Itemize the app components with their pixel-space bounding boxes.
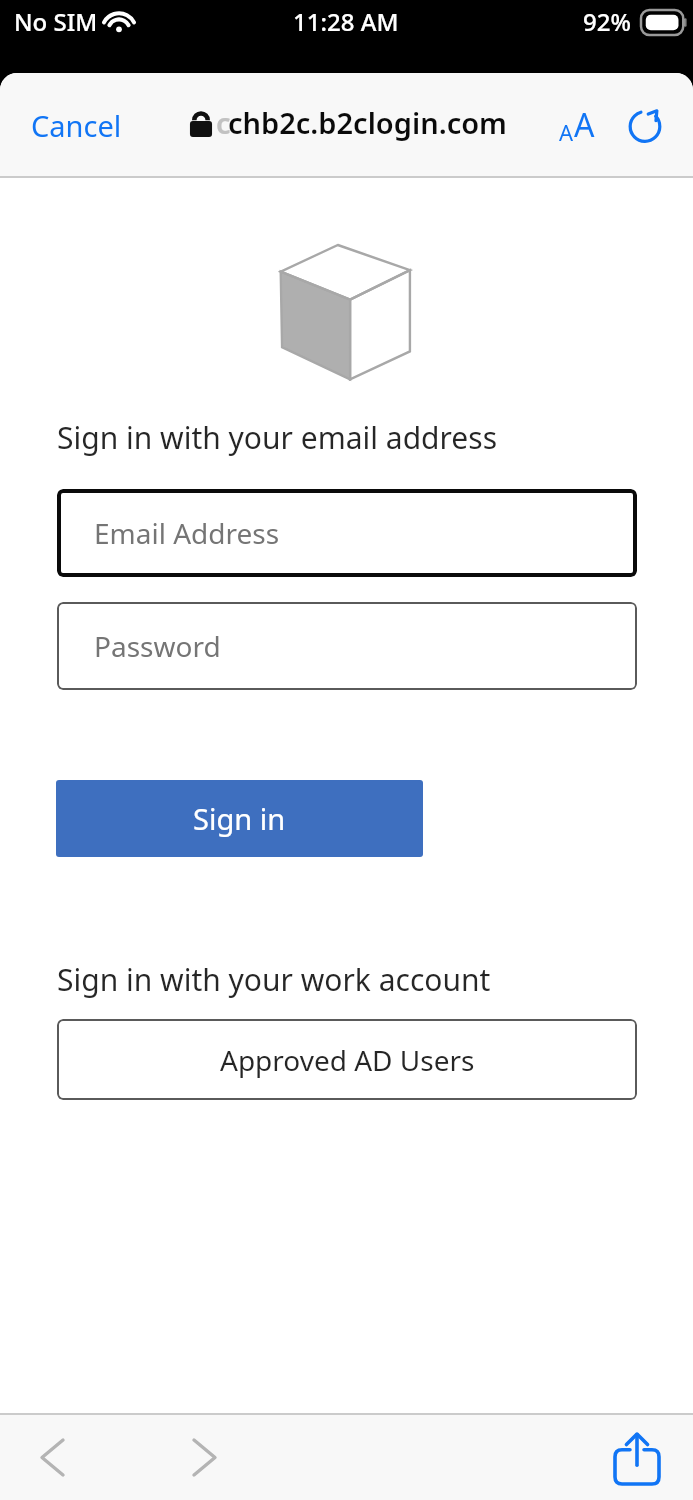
staticText: chb2c.b2clogin.com <box>228 103 507 142</box>
staticText: Approved AD Users <box>220 1041 475 1079</box>
button[interactable]: Email Address <box>57 489 637 577</box>
staticText: A <box>559 117 574 147</box>
staticText: A <box>574 103 595 147</box>
button[interactable]: Approved AD Users <box>57 1019 637 1100</box>
staticText: Email Address <box>94 514 280 552</box>
staticText: Sign in with your email address <box>57 417 498 458</box>
button[interactable]: Reload <box>611 91 679 159</box>
staticText: 92% <box>583 5 631 38</box>
button[interactable]: Back <box>12 1423 92 1491</box>
button[interactable]: Cancel <box>12 89 140 161</box>
button[interactable]: Share <box>596 1421 678 1495</box>
staticText: Password <box>94 627 221 665</box>
staticText: Sign in <box>193 799 286 838</box>
staticText: No SIM <box>14 5 98 38</box>
button[interactable]: Text size <box>543 91 611 159</box>
staticText: Cancel <box>31 106 122 145</box>
staticText: Sign in with your work account <box>57 959 491 1000</box>
staticText: c <box>216 103 231 142</box>
staticText: 11:28 AM <box>293 5 399 38</box>
button[interactable]: Forward <box>164 1423 244 1491</box>
button[interactable]: Sign in <box>56 780 423 857</box>
button[interactable]: Password <box>57 602 637 690</box>
